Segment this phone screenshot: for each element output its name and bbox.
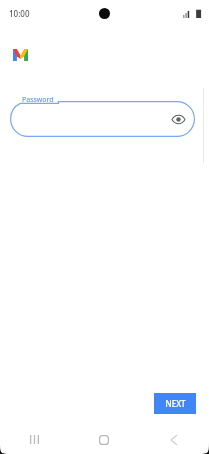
staticText: NEXT [165, 398, 186, 409]
button[interactable]: Home [69, 425, 139, 454]
staticText: Password [22, 95, 54, 105]
staticText: 10:00 [9, 8, 30, 19]
button[interactable]: NEXT [154, 393, 196, 414]
button[interactable] [10, 101, 195, 137]
button[interactable]: Recents [0, 425, 69, 454]
button[interactable]: Show password [168, 109, 188, 129]
button[interactable]: Back [139, 425, 209, 454]
